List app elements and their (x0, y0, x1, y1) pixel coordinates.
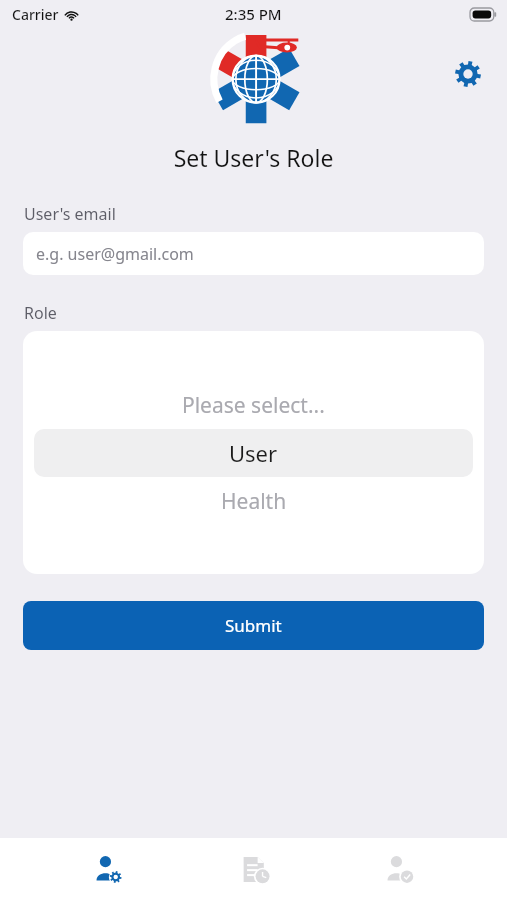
button[interactable]: Submit (23, 601, 484, 650)
button[interactable]: Please select... (23, 381, 484, 429)
button[interactable]: e.g. user@gmail.com (23, 232, 484, 275)
staticText: e.g. user@gmail.com (36, 243, 194, 265)
staticText: Set User's Role (0, 142, 507, 173)
staticText: Please select... (182, 391, 325, 420)
staticText: User (229, 438, 278, 468)
button[interactable]: Settings (451, 57, 485, 91)
staticText: Health (221, 487, 287, 516)
staticText: Role (24, 302, 507, 324)
button[interactable]: Set user role (70, 841, 146, 897)
button[interactable]: User (34, 429, 473, 477)
staticText: 2:35 PM (225, 4, 282, 24)
button[interactable]: Verify user (361, 841, 437, 897)
staticText: Submit (225, 614, 282, 637)
staticText: User's email (24, 203, 507, 225)
button[interactable]: Request history (216, 841, 292, 897)
staticText: Carrier (12, 5, 59, 24)
button[interactable]: Health (23, 477, 484, 525)
